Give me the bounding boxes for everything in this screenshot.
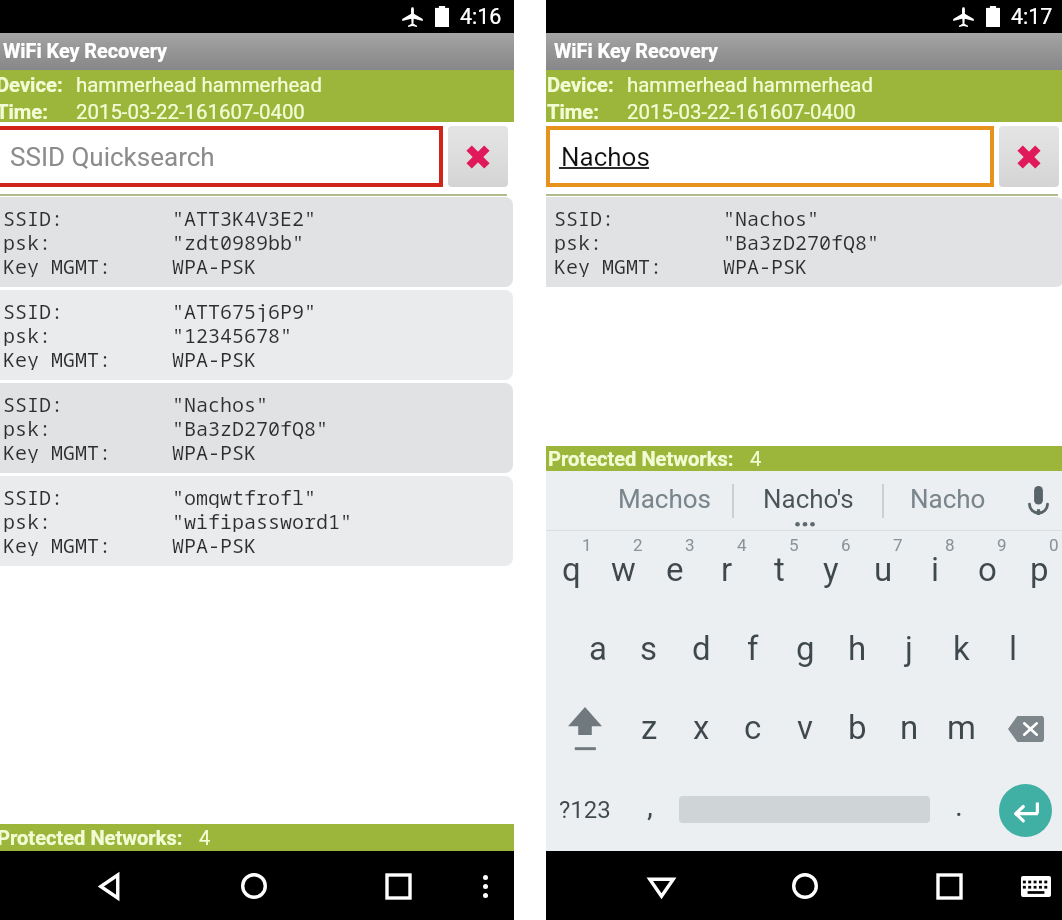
button[interactable]: SSID: (546, 197, 1062, 287)
button[interactable]: ?123 (550, 768, 620, 851)
button[interactable]: Hide keyboard (637, 862, 685, 910)
staticText: 8 (945, 535, 955, 555)
button[interactable]: k (935, 610, 987, 689)
staticText: 7 (893, 535, 903, 555)
button[interactable]: 9 (961, 531, 1013, 610)
staticText: psk: (3, 229, 172, 253)
button[interactable]: Voice input (1012, 471, 1062, 530)
button[interactable]: SSID: (0, 476, 513, 566)
button[interactable]: 0 (1013, 531, 1062, 610)
staticText: 2015-03-22-161607-0400 (76, 100, 305, 122)
staticText: "omgwtfrofl" (172, 484, 316, 508)
staticText: WPA-PSK (172, 532, 256, 556)
button[interactable]: b (831, 689, 883, 768)
staticText: 4:16 (460, 4, 502, 29)
button[interactable]: Nacho (884, 471, 1012, 530)
button[interactable]: SSID: (0, 290, 513, 380)
button[interactable]: 4 (701, 531, 753, 610)
button[interactable]: Nacho's (734, 471, 882, 530)
button[interactable]: 3 (649, 531, 701, 610)
button[interactable]: More options (461, 862, 509, 910)
button[interactable]: x (675, 689, 727, 768)
button[interactable]: , (626, 768, 674, 851)
staticText: Nachos (561, 142, 650, 172)
button[interactable]: j (883, 610, 935, 689)
button[interactable]: a (572, 610, 623, 689)
staticText: WPA-PSK (172, 346, 256, 370)
staticText: 4 (199, 826, 211, 850)
button[interactable]: l (987, 610, 1039, 689)
staticText: Time: (0, 100, 76, 122)
button[interactable]: 8 (909, 531, 961, 610)
button[interactable]: c (727, 689, 779, 768)
staticText: y (823, 550, 839, 589)
staticText: psk: (554, 229, 723, 253)
button[interactable]: Keyboard (1012, 862, 1060, 910)
button[interactable]: Home (781, 862, 829, 910)
button[interactable]: m (935, 689, 987, 768)
staticText: 0 (1049, 535, 1059, 555)
staticText: "ATT675j6P9" (172, 298, 316, 322)
staticText: WPA-PSK (172, 253, 256, 277)
button[interactable]: Clear search (448, 126, 508, 187)
button[interactable]: 5 (753, 531, 805, 610)
staticText: e (666, 550, 684, 589)
staticText: Nacho's (763, 484, 854, 514)
staticText: Machos (618, 484, 712, 514)
button[interactable]: Clear search (999, 126, 1059, 187)
button[interactable]: v (779, 689, 831, 768)
staticText: g (796, 629, 815, 668)
staticText: Protected Networks: (0, 826, 183, 850)
staticText: 1 (582, 535, 592, 555)
button[interactable]: h (831, 610, 883, 689)
staticText: s (640, 629, 658, 668)
button[interactable]: Enter (993, 778, 1057, 842)
staticText: r (721, 550, 733, 589)
button[interactable]: Shift (546, 689, 624, 768)
staticText: 5 (789, 535, 799, 555)
button[interactable]: 1 (546, 531, 597, 610)
staticText: SSID Quicksearch (10, 142, 215, 172)
staticText: WiFi Key Recovery (3, 40, 168, 63)
button[interactable]: Machos (598, 471, 732, 530)
button[interactable]: Back (86, 862, 134, 910)
staticText: 2 (633, 535, 643, 555)
staticText: "wifipassword1" (172, 508, 352, 532)
button[interactable]: d (675, 610, 727, 689)
button[interactable]: SSID: (0, 197, 513, 287)
staticText: SSID: (3, 298, 172, 322)
button[interactable]: Recent apps (925, 862, 973, 910)
staticText: "Nachos" (172, 391, 268, 415)
staticText: v (797, 708, 813, 747)
staticText: i (931, 550, 940, 589)
button[interactable]: Home (230, 862, 278, 910)
staticText: hammerhead hammerhead (76, 73, 322, 97)
staticText: x (693, 708, 710, 747)
button[interactable]: 2 (597, 531, 649, 610)
button[interactable]: Recent apps (374, 862, 422, 910)
staticText: p (1030, 550, 1049, 589)
button[interactable]: z (624, 689, 675, 768)
staticText: SSID: (3, 205, 172, 229)
staticText: psk: (3, 322, 172, 346)
staticText: "ATT3K4V3E2" (172, 205, 316, 229)
staticText: m (947, 708, 976, 747)
button[interactable]: 7 (857, 531, 909, 610)
button[interactable]: s (623, 610, 675, 689)
button[interactable]: Space (679, 768, 930, 851)
button[interactable]: f (727, 610, 779, 689)
staticText: a (589, 629, 607, 668)
button[interactable]: 6 (805, 531, 857, 610)
button[interactable]: Nachos (550, 130, 990, 183)
button[interactable]: n (883, 689, 935, 768)
button[interactable]: g (779, 610, 831, 689)
button[interactable]: Delete (987, 689, 1062, 768)
staticText: t (774, 550, 785, 589)
staticText: SSID: (3, 391, 172, 415)
button[interactable]: SSID Quicksearch (0, 130, 439, 183)
button[interactable]: SSID: (0, 383, 513, 473)
staticText: Protected Networks: (548, 447, 734, 471)
button[interactable]: . (936, 768, 982, 851)
staticText: 3 (685, 535, 695, 555)
staticText: Key MGMT: (3, 346, 172, 370)
